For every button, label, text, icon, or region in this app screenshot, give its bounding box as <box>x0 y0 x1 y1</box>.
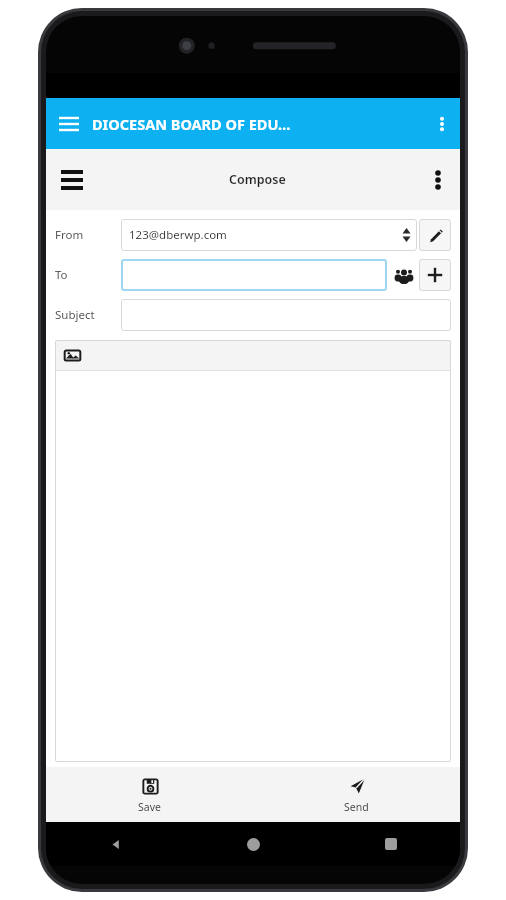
staticText: Send <box>344 800 369 814</box>
button[interactable]: Edit sender <box>419 219 451 251</box>
button[interactable]: Send <box>253 767 460 822</box>
button[interactable]: Insert image <box>62 345 83 366</box>
staticText: Subject <box>55 307 95 323</box>
staticText: 123@dberwp.com <box>129 227 402 243</box>
button[interactable]: Subject <box>121 299 451 331</box>
button[interactable]: Add recipient <box>419 259 451 291</box>
button[interactable]: Back <box>46 822 184 866</box>
staticText: To <box>55 267 68 283</box>
button[interactable]: Save <box>46 767 253 822</box>
button[interactable]: Open navigation menu <box>46 98 92 149</box>
staticText: From <box>55 227 84 243</box>
staticText: Save <box>138 800 161 814</box>
button[interactable]: To recipients <box>121 259 387 291</box>
staticText: Compose <box>229 171 286 188</box>
button[interactable]: More options <box>416 149 460 210</box>
staticText: DIOCESAN BOARD OF EDU… <box>92 114 291 134</box>
button[interactable]: Choose contacts <box>389 260 419 290</box>
button[interactable]: 123@dberwp.com <box>121 219 417 251</box>
button[interactable]: Recent apps <box>322 822 460 866</box>
button[interactable]: Menu <box>46 149 98 210</box>
button[interactable]: Home <box>184 822 322 866</box>
button[interactable]: More options <box>424 98 460 149</box>
button[interactable]: Message body <box>55 371 451 762</box>
